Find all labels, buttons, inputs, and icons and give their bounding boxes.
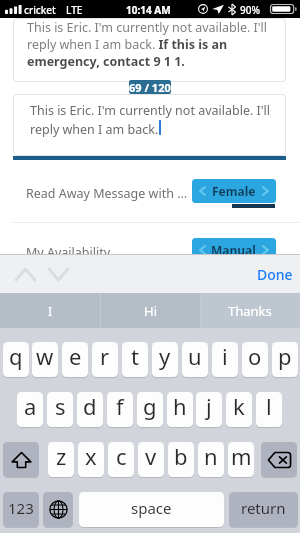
button[interactable]: u bbox=[182, 342, 208, 377]
button[interactable]: w bbox=[32, 342, 58, 377]
button[interactable]: f bbox=[107, 392, 133, 427]
staticText: h bbox=[173, 392, 187, 421]
staticText: i bbox=[222, 342, 228, 371]
button[interactable]: g bbox=[137, 392, 163, 427]
staticText: g bbox=[143, 392, 157, 421]
button[interactable]: p bbox=[272, 342, 298, 377]
button[interactable]: h bbox=[167, 392, 193, 427]
button[interactable]: I bbox=[0, 293, 100, 328]
button[interactable]: y bbox=[152, 342, 178, 377]
staticText: LTE bbox=[66, 3, 83, 17]
button[interactable]: Female bbox=[192, 179, 276, 203]
button[interactable]: t bbox=[122, 342, 148, 377]
button[interactable]: x bbox=[78, 442, 104, 477]
staticText: p bbox=[278, 342, 292, 371]
button[interactable]: z bbox=[48, 442, 74, 477]
button[interactable]: Read Away Message with ... bbox=[0, 180, 300, 206]
button[interactable]: a bbox=[17, 392, 43, 427]
staticText: return bbox=[241, 498, 286, 518]
staticText: d bbox=[83, 392, 97, 421]
staticText: t bbox=[131, 342, 139, 371]
button[interactable]: i bbox=[212, 342, 238, 377]
button[interactable]: d bbox=[77, 392, 103, 427]
staticText: e bbox=[69, 342, 82, 371]
button[interactable]: c bbox=[108, 442, 134, 477]
staticText: r bbox=[100, 342, 110, 371]
staticText: Done bbox=[257, 265, 293, 284]
staticText: cricket bbox=[24, 3, 56, 17]
button[interactable]: Previous field bbox=[9, 260, 41, 288]
button[interactable]: Switch keyboard language bbox=[43, 492, 73, 527]
staticText: 10:14 AM bbox=[126, 3, 171, 17]
staticText: j bbox=[206, 392, 212, 421]
staticText: o bbox=[248, 342, 262, 371]
staticText: k bbox=[233, 392, 245, 421]
staticText: u bbox=[188, 342, 202, 371]
button[interactable]: Shift bbox=[3, 442, 39, 477]
staticText: w bbox=[36, 342, 54, 371]
staticText: 90% bbox=[240, 3, 260, 17]
button[interactable]: s bbox=[47, 392, 73, 427]
button[interactable]: My Availability bbox=[0, 239, 300, 265]
button[interactable]: l bbox=[256, 392, 282, 427]
staticText: Manual bbox=[211, 242, 256, 258]
staticText: l bbox=[266, 392, 272, 421]
button[interactable]: k bbox=[226, 392, 252, 427]
button[interactable]: Thanks bbox=[200, 293, 300, 328]
button[interactable]: Done bbox=[252, 259, 298, 289]
staticText: Thanks bbox=[228, 302, 272, 320]
staticText: y bbox=[159, 342, 171, 371]
staticText: 69 / 120 bbox=[129, 80, 171, 94]
button[interactable]: j bbox=[196, 392, 222, 427]
button[interactable]: n bbox=[198, 442, 224, 477]
staticText: x bbox=[85, 442, 97, 471]
button[interactable]: Hi bbox=[100, 293, 200, 328]
button[interactable]: r bbox=[92, 342, 118, 377]
button[interactable]: Return bbox=[229, 492, 298, 527]
staticText: s bbox=[55, 392, 66, 421]
staticText: a bbox=[24, 392, 37, 421]
staticText: This is Eric. I'm currently not availabl… bbox=[30, 102, 272, 137]
staticText: 123 bbox=[8, 498, 34, 518]
button[interactable]: Backspace bbox=[261, 442, 297, 477]
button[interactable]: m bbox=[228, 442, 254, 477]
button[interactable]: space bbox=[79, 492, 224, 527]
button[interactable]: Manual bbox=[192, 238, 276, 262]
staticText: b bbox=[174, 442, 188, 471]
button[interactable]: Numbers bbox=[3, 492, 39, 527]
staticText: n bbox=[204, 442, 218, 471]
staticText: My Availability bbox=[26, 244, 111, 261]
staticText: Hi bbox=[144, 302, 157, 320]
staticText: This is Eric. I'm currently not availabl… bbox=[27, 19, 272, 70]
button[interactable]: Next field bbox=[42, 260, 74, 288]
button[interactable]: v bbox=[138, 442, 164, 477]
staticText: m bbox=[231, 442, 252, 471]
staticText: Read Away Message with ... bbox=[26, 185, 188, 202]
staticText: q bbox=[9, 342, 23, 371]
staticText: z bbox=[56, 442, 67, 471]
staticText: f bbox=[116, 392, 124, 421]
staticText: space bbox=[131, 498, 172, 518]
button[interactable]: b bbox=[168, 442, 194, 477]
button[interactable]: o bbox=[242, 342, 268, 377]
staticText: c bbox=[116, 442, 127, 471]
staticText: v bbox=[145, 442, 157, 471]
staticText: Female bbox=[212, 183, 256, 199]
button[interactable]: q bbox=[3, 342, 29, 377]
button[interactable]: e bbox=[62, 342, 88, 377]
staticText: I bbox=[48, 302, 53, 320]
